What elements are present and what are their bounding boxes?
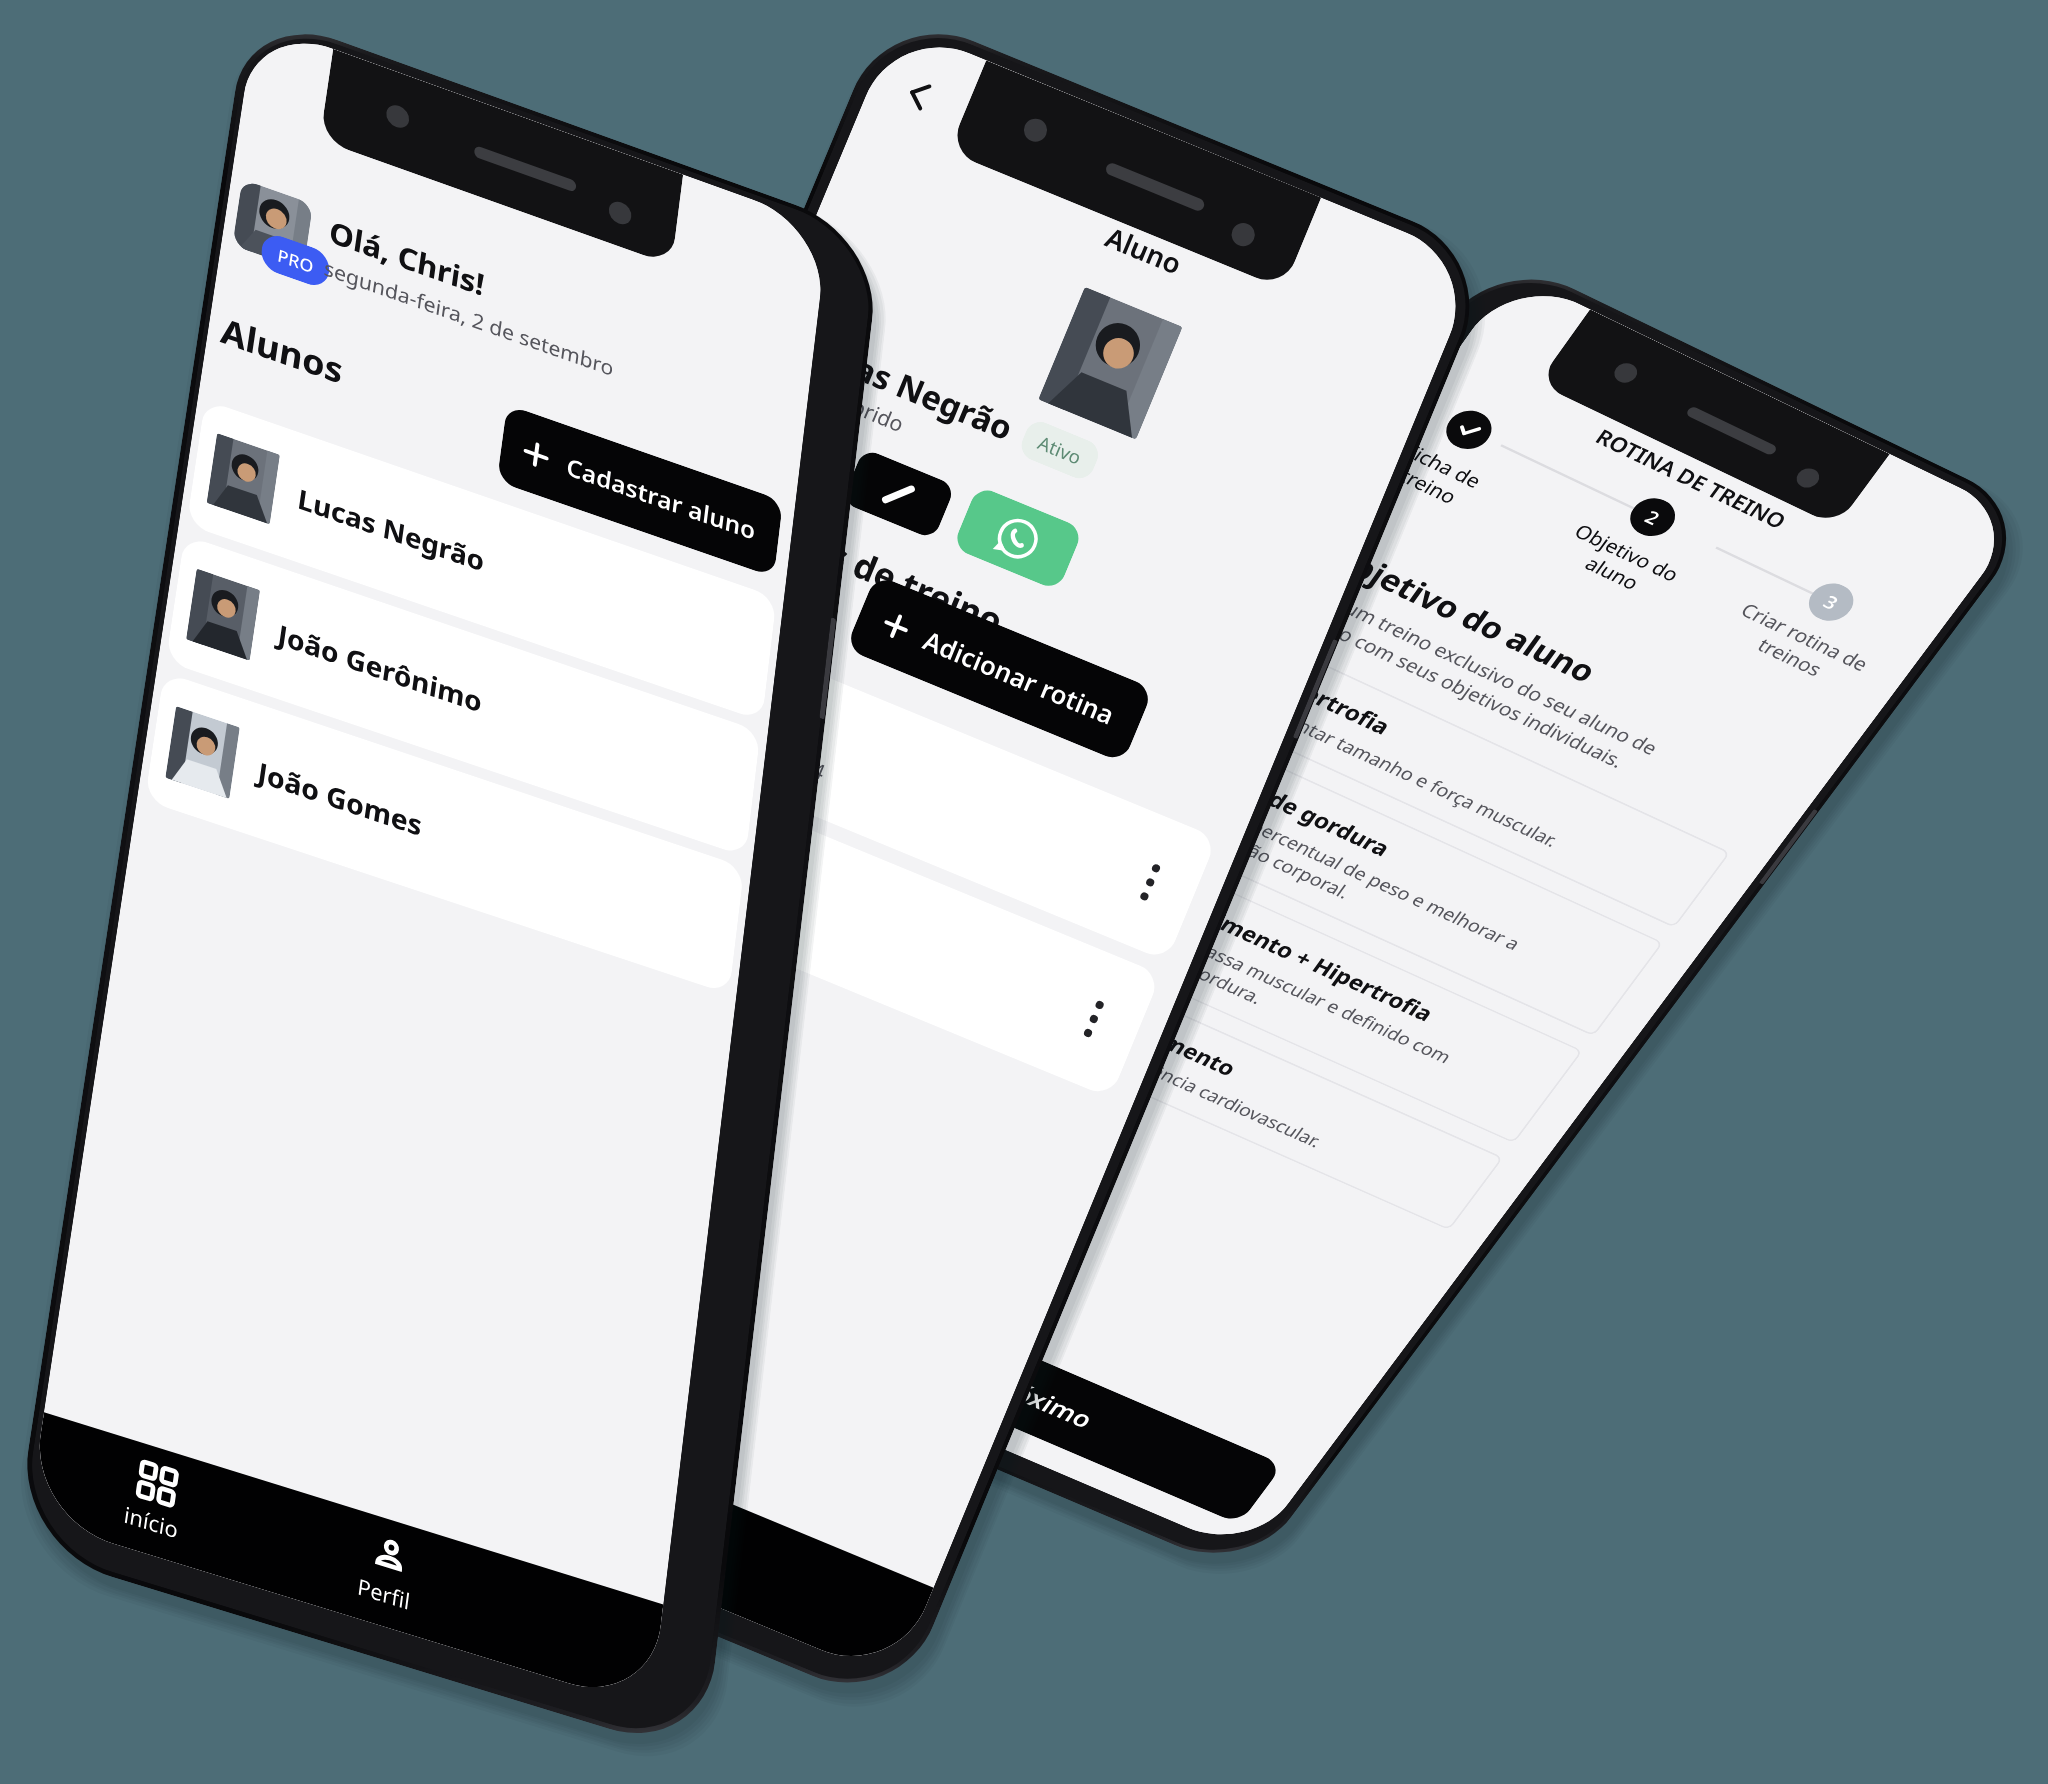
staticText: ROTINA DE TREINO — [1590, 422, 1793, 534]
staticText: Objetivo do aluno — [1320, 535, 1605, 691]
button[interactable]: Mais opções — [1065, 988, 1122, 1050]
button[interactable]: Mais opções — [1122, 851, 1179, 913]
staticText: segunda-feira, 2 de setembro — [322, 253, 616, 382]
staticText: Híbrido — [828, 383, 909, 438]
button[interactable]: Lucas Negrão — [186, 400, 777, 721]
staticText: Próximo — [983, 1366, 1101, 1435]
staticText: Ficha de treino — [1385, 437, 1487, 514]
button[interactable]: Adicionar rotina — [845, 574, 1154, 763]
staticText: início — [122, 1499, 180, 1545]
staticText: PRO — [276, 243, 316, 279]
button[interactable]: Perfil — [263, 1485, 508, 1661]
staticText: Reduzir percentual de peso e melhorar a … — [1164, 783, 1525, 974]
staticText: Melhorar resistência cardiovascular. — [1022, 1003, 1327, 1152]
button[interactable]: Condicionamento — [993, 953, 1504, 1230]
staticText: Aluno — [1100, 218, 1187, 282]
staticText: Hipertrofia — [1261, 662, 1397, 741]
button[interactable]: João Gomes — [144, 672, 744, 994]
button[interactable]: Cadastrar aluno — [497, 404, 783, 577]
button[interactable]: Treino A — [623, 614, 1218, 962]
staticText: Treino A — [671, 651, 794, 732]
staticText: Cadastrar aluno — [565, 449, 758, 547]
staticText: 2 — [1640, 504, 1665, 530]
button[interactable]: Perfil — [530, 1437, 792, 1622]
staticText: Condicionamento — [1039, 975, 1242, 1082]
staticText: Emagrecimento + Hipertrofia — [1116, 865, 1440, 1028]
button[interactable]: início — [307, 1344, 569, 1529]
staticText: João Gomes — [255, 753, 424, 844]
button[interactable]: Editar — [841, 448, 956, 540]
staticText: Treino B — [615, 787, 737, 867]
staticText: João Gerônimo — [276, 615, 485, 721]
staticText: Alunos — [218, 306, 347, 393]
staticText: Lucas Negrão — [796, 324, 1020, 450]
button[interactable]: João Gerônimo — [166, 535, 761, 857]
staticText: Perda de gordura — [1195, 754, 1397, 863]
staticText: Rotinas de treino — [717, 487, 1011, 645]
button[interactable]: Próximo — [796, 1273, 1284, 1524]
staticText: Ganho de massa muscular e definido com r… — [1086, 894, 1457, 1087]
button[interactable]: WhatsApp — [952, 485, 1084, 591]
staticText: Ativo — [1034, 430, 1085, 471]
button[interactable]: Voltar — [890, 67, 946, 123]
staticText: Adicionar rotina — [918, 622, 1120, 732]
staticText: Criar rotina de treinos — [1721, 597, 1874, 696]
staticText: Perfil — [625, 1525, 683, 1571]
button[interactable]: Hipertrofia — [1214, 639, 1731, 928]
staticText: Objetivo do aluno — [1555, 518, 1685, 607]
staticText: Olá, Chris! — [327, 211, 488, 304]
staticText: Lucas Negrão — [295, 480, 487, 580]
staticText: Perfil — [356, 1571, 412, 1616]
button[interactable]: Perda de gordura — [1135, 731, 1664, 1036]
staticText: 02 outubro 2024 — [601, 830, 760, 917]
button[interactable]: início — [28, 1412, 278, 1590]
staticText: Aumentar tamanho e força muscular. — [1243, 691, 1564, 852]
staticText: Crie um treino exclusivo do seu aluno de… — [1284, 576, 1664, 781]
button[interactable]: Emagrecimento + Hipertrofia — [1057, 843, 1583, 1143]
button[interactable]: Treino B — [567, 750, 1161, 1098]
staticText: 3 — [1818, 589, 1844, 615]
staticText: 10 setembro 2024 — [658, 694, 830, 786]
